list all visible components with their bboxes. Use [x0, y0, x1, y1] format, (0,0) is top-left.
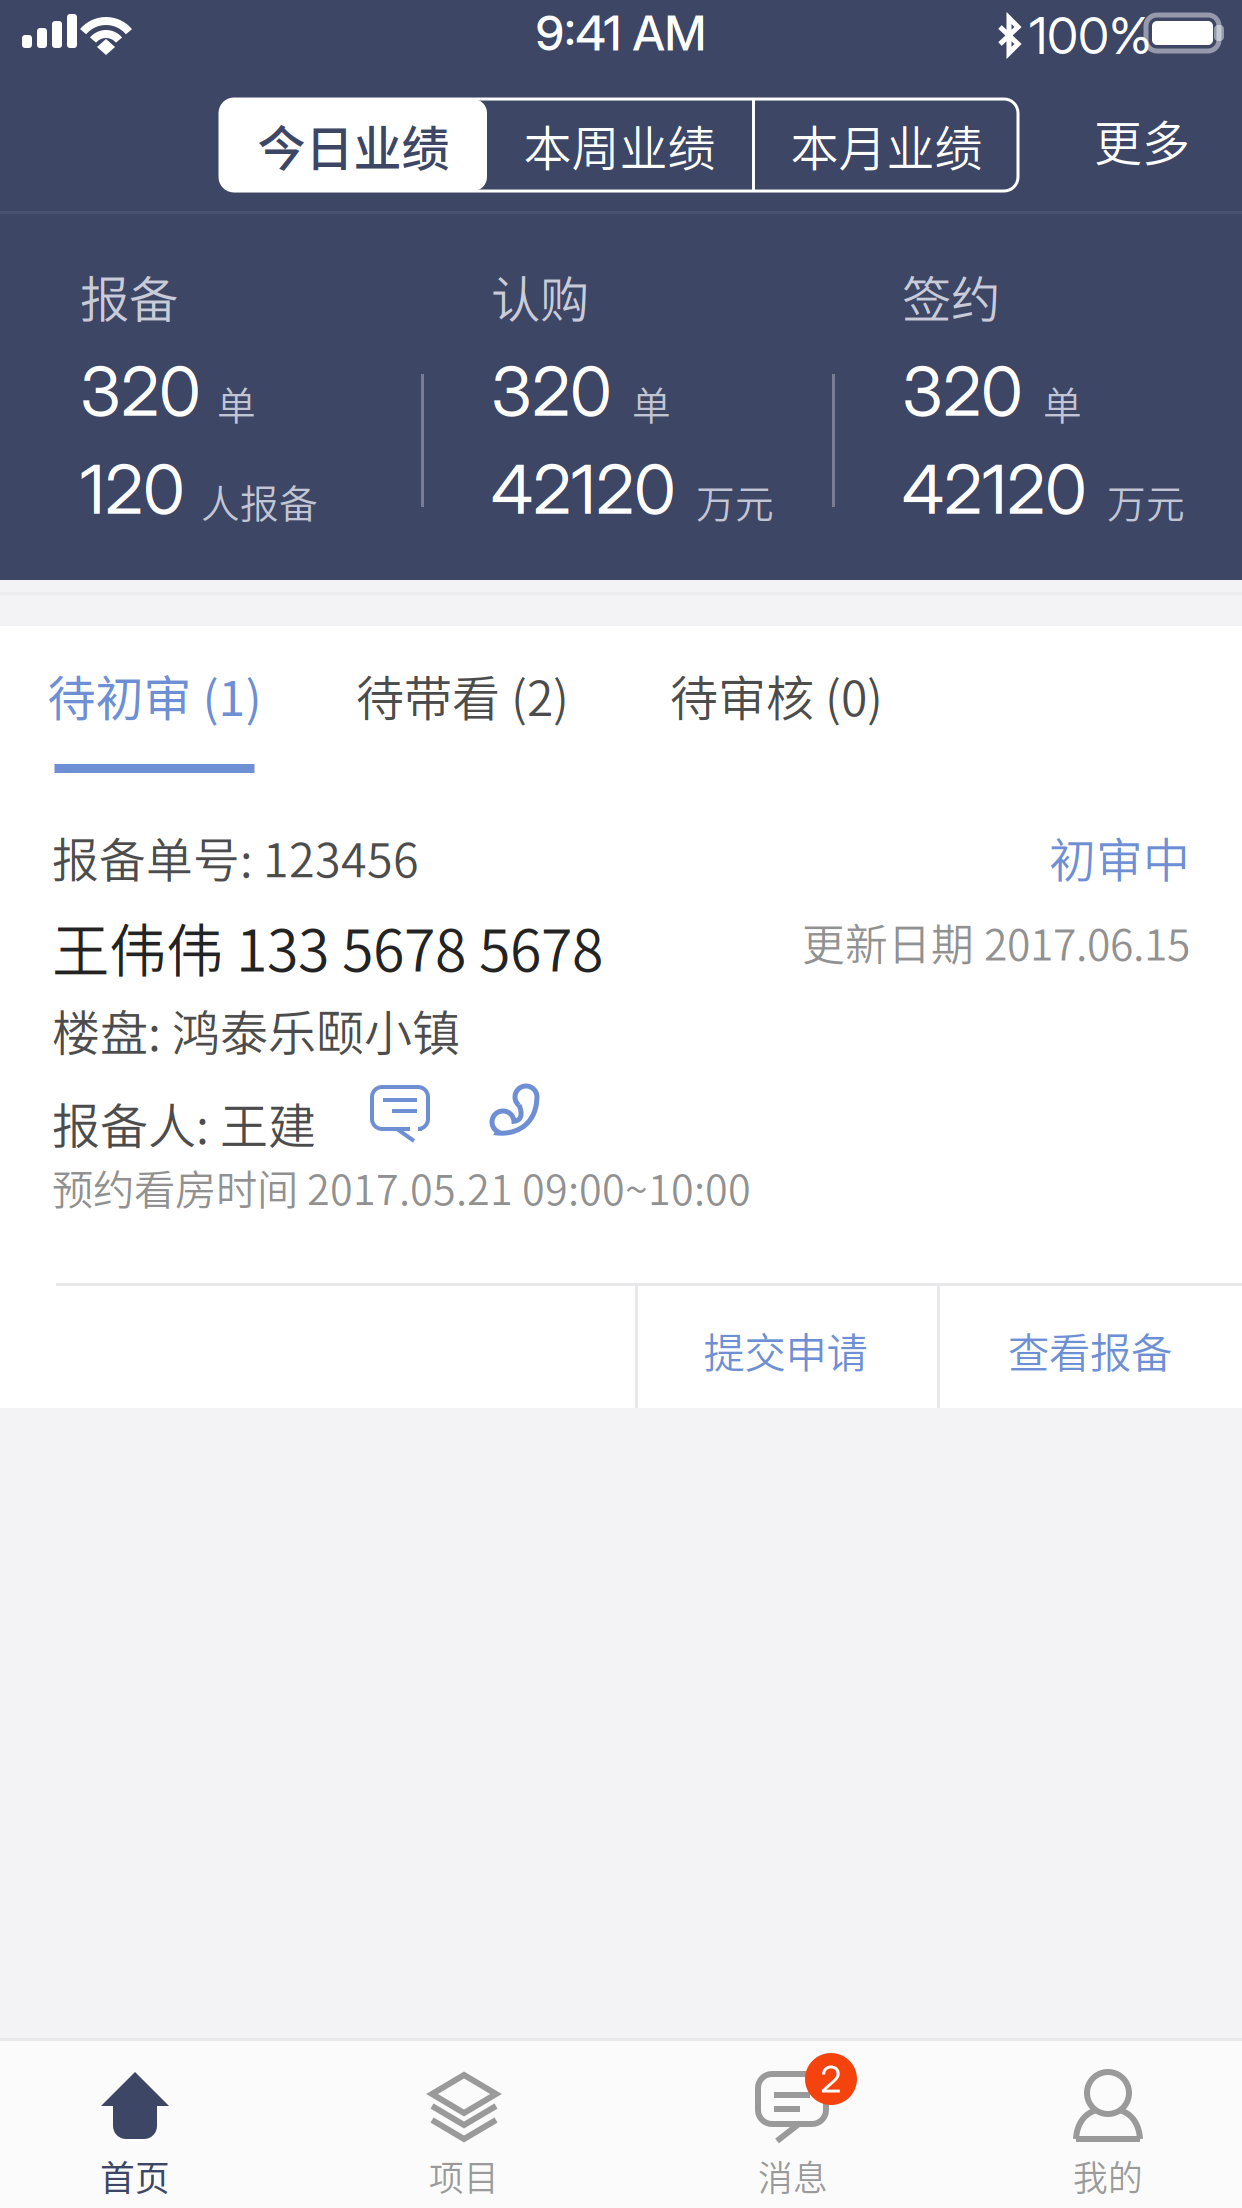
- staticText: 项目: [429, 2151, 499, 2201]
- staticText: 首页: [100, 2151, 170, 2201]
- staticText: 320: [80, 350, 201, 432]
- button[interactable]: 本周业绩: [487, 99, 752, 191]
- staticText: 本周业绩: [523, 110, 715, 180]
- staticText: 签约: [902, 260, 1000, 332]
- staticText: 查看报备: [1008, 1320, 1172, 1380]
- staticText: 人报备: [201, 473, 318, 529]
- staticText: 42120: [491, 448, 676, 530]
- staticText: 报备: [80, 260, 178, 332]
- button[interactable]: 更多: [1058, 94, 1226, 186]
- button[interactable]: 提交申请: [636, 1289, 935, 1411]
- staticText: 楼盘: 鸿泰乐颐小镇: [52, 995, 460, 1064]
- staticText: 报备人: 王建: [52, 1088, 316, 1157]
- staticText: 2: [820, 2056, 841, 2102]
- button[interactable]: 待审核 (0): [625, 626, 928, 764]
- staticText: 单: [217, 375, 256, 431]
- staticText: 提交申请: [703, 1320, 867, 1380]
- staticText: 万元: [1107, 473, 1185, 529]
- button[interactable]: 发消息: [372, 1083, 430, 1143]
- staticText: 万元: [696, 473, 774, 529]
- staticText: 更新日期 2017.06.15: [802, 911, 1190, 973]
- staticText: 消息: [758, 2151, 828, 2201]
- staticText: 本月业绩: [790, 110, 982, 180]
- staticText: 预约看房时间 2017.05.21 09:00~10:00: [52, 1157, 751, 1217]
- staticText: 9:41 AM: [535, 4, 706, 62]
- staticText: 今日业绩: [257, 110, 449, 180]
- staticText: 待初审 (1): [47, 660, 261, 730]
- staticText: 我的: [1073, 2151, 1143, 2201]
- staticText: 认购: [491, 260, 589, 332]
- button[interactable]: 待初审 (1): [3, 626, 306, 773]
- staticText: 100%: [1029, 5, 1152, 66]
- button[interactable]: 项目: [0, 2038, 1242, 2208]
- staticText: 320: [491, 350, 612, 432]
- staticText: 单: [632, 375, 671, 431]
- button[interactable]: 我的: [0, 2038, 1242, 2208]
- button[interactable]: 待带看 (2): [311, 626, 614, 764]
- button[interactable]: 2: [0, 2038, 1242, 2208]
- button[interactable]: 今日业绩: [220, 99, 487, 191]
- staticText: 待审核 (0): [670, 660, 883, 730]
- staticText: 320: [902, 350, 1023, 432]
- staticText: 42120: [902, 448, 1087, 530]
- staticText: 120: [80, 448, 185, 530]
- button[interactable]: 查看报备: [939, 1289, 1241, 1411]
- staticText: 报备单号: 123456: [52, 823, 419, 891]
- button[interactable]: 本月业绩: [755, 99, 1018, 191]
- button[interactable]: 首页: [0, 2038, 1242, 2208]
- staticText: 更多: [1094, 105, 1190, 175]
- button[interactable]: 拨打电话: [487, 1081, 545, 1139]
- staticText: 待带看 (2): [356, 660, 569, 730]
- staticText: 王伟伟 133 5678 5678: [52, 905, 603, 988]
- staticText: 单: [1043, 375, 1082, 431]
- staticText: 初审中: [1049, 823, 1190, 891]
